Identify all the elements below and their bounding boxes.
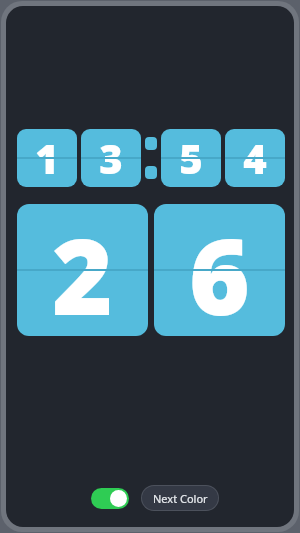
button[interactable]: 4 [225, 129, 285, 187]
staticText: Next Color [153, 491, 208, 506]
button[interactable]: Next Color [142, 486, 218, 510]
staticText: 5 [179, 131, 203, 185]
button[interactable]: 3 [81, 129, 141, 187]
button[interactable]: 6 [154, 204, 285, 336]
staticText: 1 [35, 131, 59, 185]
button[interactable]: 2 [17, 204, 148, 336]
staticText: 2 [52, 204, 113, 336]
staticText: 4 [243, 131, 267, 185]
staticText: 3 [99, 131, 123, 185]
button[interactable]: Toggle animation [91, 488, 129, 509]
button[interactable]: 1 [17, 129, 77, 187]
staticText: 6 [189, 204, 250, 336]
button[interactable]: 5 [161, 129, 221, 187]
